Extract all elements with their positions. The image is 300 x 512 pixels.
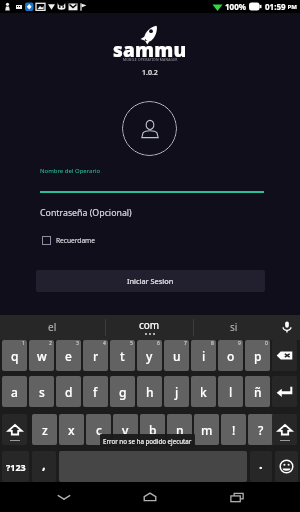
- staticText: si: [230, 320, 238, 334]
- staticText: k: [200, 384, 207, 400]
- button[interactable]: d: [56, 376, 81, 407]
- staticText: 6: [157, 340, 160, 347]
- staticText: Nombre del Operario: [40, 167, 101, 175]
- staticText: 0: [265, 340, 268, 347]
- button[interactable]: h: [137, 376, 162, 407]
- button[interactable]: .: [250, 451, 272, 482]
- button[interactable]: Recent apps: [214, 482, 260, 512]
- staticText: f: [93, 384, 98, 400]
- button[interactable]: el: [0, 315, 105, 339]
- staticText: a: [11, 384, 18, 400]
- button[interactable]: shift: [272, 414, 297, 445]
- button[interactable]: n: [167, 414, 192, 445]
- button[interactable]: ,: [32, 451, 56, 482]
- staticText: l: [229, 384, 233, 400]
- staticText: n: [176, 422, 184, 438]
- staticText: 2: [49, 340, 52, 347]
- button[interactable]: Iniciar Sesion: [36, 270, 265, 292]
- button[interactable]: a: [2, 376, 27, 407]
- button[interactable]: b: [140, 414, 165, 445]
- staticText: 01:59: [265, 1, 286, 12]
- button[interactable]: ?: [248, 414, 273, 445]
- button[interactable]: g: [110, 376, 135, 407]
- staticText: h: [146, 384, 154, 400]
- staticText: 1.0.2: [142, 68, 158, 78]
- button[interactable]: f: [83, 376, 108, 407]
- staticText: z: [42, 422, 48, 438]
- button[interactable]: k: [191, 376, 216, 407]
- button[interactable]: si: [194, 315, 274, 339]
- staticText: ?: [258, 422, 264, 438]
- staticText: .: [259, 455, 263, 473]
- staticText: PM: [286, 3, 297, 11]
- staticText: 5: [130, 340, 133, 347]
- staticText: s: [39, 384, 45, 400]
- staticText: d: [65, 384, 73, 400]
- button[interactable]: i: [191, 340, 216, 371]
- staticText: ?123: [6, 461, 26, 473]
- button[interactable]: v: [113, 414, 138, 445]
- staticText: m: [201, 422, 213, 438]
- button[interactable]: backspace: [272, 340, 297, 371]
- button[interactable]: r: [83, 340, 108, 371]
- staticText: 9: [238, 340, 241, 347]
- staticText: el: [48, 320, 57, 334]
- button[interactable]: p: [245, 340, 270, 371]
- button[interactable]: j: [164, 376, 189, 407]
- staticText: !: [232, 422, 236, 438]
- button[interactable]: w: [29, 340, 54, 371]
- staticText: v: [122, 422, 129, 438]
- button[interactable]: ?123: [2, 451, 29, 482]
- button[interactable]: Home: [127, 482, 173, 512]
- button[interactable]: e: [56, 340, 81, 371]
- staticText: ñ: [254, 384, 262, 400]
- button[interactable]: t: [110, 340, 135, 371]
- staticText: com: [139, 318, 160, 332]
- staticText: Iniciar Sesion: [127, 276, 174, 286]
- button[interactable]: enter: [272, 376, 297, 407]
- staticText: x: [68, 422, 75, 438]
- button[interactable]: m: [194, 414, 219, 445]
- staticText: 7: [184, 340, 187, 347]
- staticText: Recuerdame: [56, 236, 96, 245]
- staticText: ,: [42, 455, 46, 473]
- staticText: j: [175, 384, 179, 400]
- staticText: g: [119, 384, 127, 400]
- button[interactable]: y: [137, 340, 162, 371]
- staticText: r: [93, 348, 99, 364]
- staticText: b: [149, 422, 157, 438]
- staticText: e: [65, 348, 72, 364]
- button[interactable]: Recuerdame: [38, 233, 100, 248]
- button[interactable]: Emoji: [275, 451, 298, 482]
- staticText: 4: [103, 340, 106, 347]
- staticText: y: [146, 348, 153, 364]
- button[interactable]: l: [218, 376, 243, 407]
- staticText: MOBILE OPERATION MANAGER: [123, 57, 178, 62]
- button[interactable]: ñ: [245, 376, 270, 407]
- button[interactable]: z: [32, 414, 57, 445]
- staticText: 3: [76, 340, 79, 347]
- staticText: c: [96, 422, 102, 438]
- staticText: Error no se ha podido ejecutar: [103, 437, 192, 445]
- button[interactable]: c: [86, 414, 111, 445]
- button[interactable]: Hide keyboard: [41, 482, 87, 512]
- button[interactable]: q: [2, 340, 27, 371]
- staticText: p: [254, 348, 262, 364]
- staticText: sammu: [113, 37, 187, 63]
- button[interactable]: s: [29, 376, 54, 407]
- button[interactable]: com: [106, 315, 193, 339]
- button[interactable]: u: [164, 340, 189, 371]
- staticText: 1: [22, 340, 25, 347]
- button[interactable]: Voice input: [274, 315, 300, 339]
- button[interactable]: shift: [2, 414, 27, 445]
- button[interactable]: x: [59, 414, 84, 445]
- staticText: w: [37, 348, 47, 364]
- staticText: q: [11, 348, 19, 364]
- staticText: t: [120, 348, 125, 364]
- staticText: u: [173, 348, 181, 364]
- button[interactable]: !: [221, 414, 246, 445]
- button[interactable]: o: [218, 340, 243, 371]
- staticText: 100%: [225, 1, 246, 12]
- staticText: o: [227, 348, 235, 364]
